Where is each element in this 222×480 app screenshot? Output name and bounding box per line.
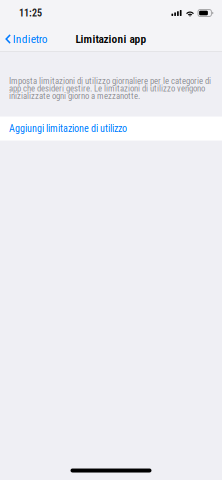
staticText: Indietro [13,32,48,46]
staticText: Aggiungi limitazione di utilizzo [9,123,127,134]
staticText: 11:25 [19,7,42,19]
button[interactable]: Indietro [0,27,54,51]
button[interactable]: Aggiungi limitazione di utilizzo [0,117,222,141]
staticText: Limitazioni app [75,32,146,46]
staticText: Imposta limitazioni di utilizzo giornali… [9,76,211,101]
